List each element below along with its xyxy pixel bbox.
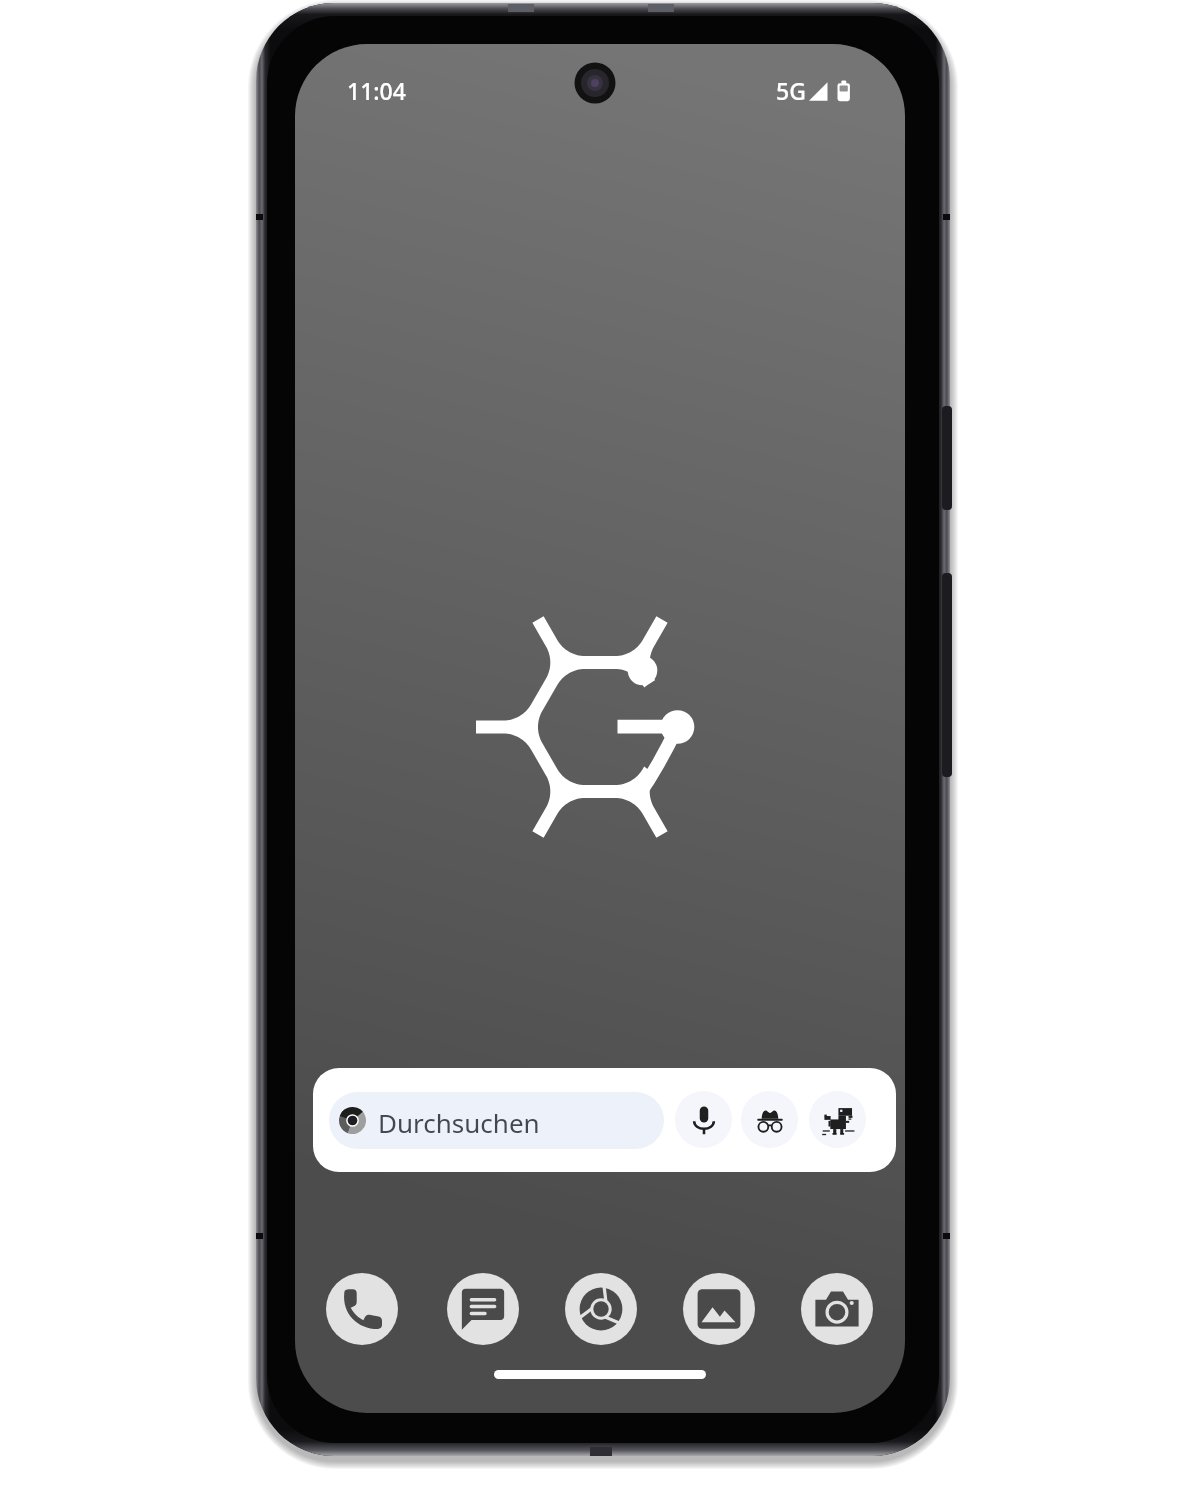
staticText: 11:04 <box>347 75 406 106</box>
button[interactable]: Search incognito <box>741 1091 798 1148</box>
button[interactable]: Dino game <box>809 1091 866 1148</box>
button[interactable]: Photos <box>683 1273 755 1345</box>
button[interactable]: Camera <box>801 1273 873 1345</box>
staticText: 5G <box>776 75 806 106</box>
staticText: Durchsuchen <box>378 1105 540 1140</box>
button[interactable]: Chrome <box>565 1273 637 1345</box>
button[interactable]: Voice search <box>675 1091 732 1148</box>
button[interactable]: Phone <box>326 1273 398 1345</box>
button[interactable] <box>329 1092 664 1149</box>
button[interactable]: Messages <box>447 1273 519 1345</box>
